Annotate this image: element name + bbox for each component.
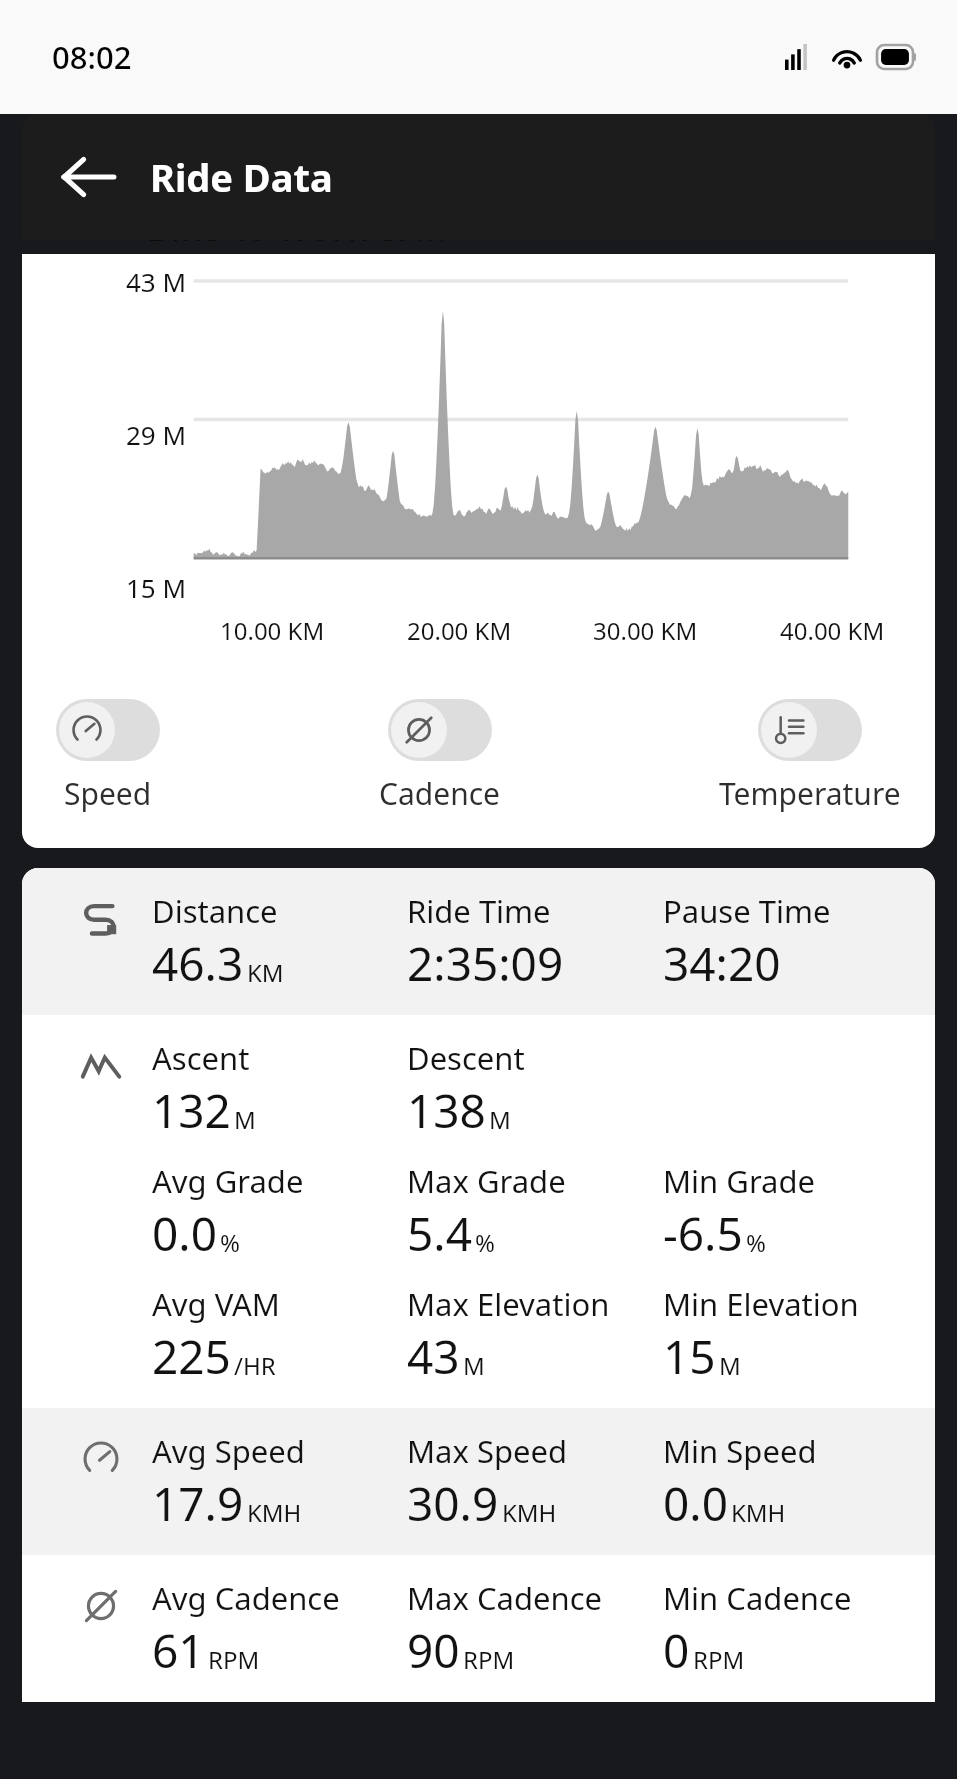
staticText: % xyxy=(746,1226,766,1259)
staticText: 132 xyxy=(152,1079,231,1142)
staticText: 17.9 xyxy=(152,1472,244,1535)
staticText: M xyxy=(489,1103,511,1136)
staticText: Speed xyxy=(64,773,152,814)
staticText: 15 xyxy=(663,1325,716,1388)
staticText: 0.0 xyxy=(663,1472,728,1535)
staticText: Ride Time xyxy=(407,890,551,932)
staticText: M xyxy=(719,1349,741,1382)
staticText: 08:02 xyxy=(52,36,132,78)
staticText: Avg VAM xyxy=(152,1283,280,1325)
button[interactable]: Temperature xyxy=(713,699,907,814)
button[interactable]: Ascent xyxy=(22,1015,935,1408)
staticText: Ascent xyxy=(152,1037,250,1079)
staticText: Avg Grade xyxy=(152,1160,304,1202)
staticText: 20.00 KM xyxy=(407,614,512,647)
staticText: 34:20 xyxy=(663,932,781,995)
button[interactable]: Distance xyxy=(22,868,935,1015)
staticText: KMH xyxy=(731,1496,786,1529)
staticText: M xyxy=(234,1103,256,1136)
staticText: Avg Cadence xyxy=(152,1577,340,1619)
staticText: 30.9 xyxy=(407,1472,499,1535)
staticText: M xyxy=(463,1349,485,1382)
staticText: -6.5 xyxy=(663,1202,743,1265)
staticText: Avg Speed xyxy=(152,1430,305,1472)
staticText: Max Speed xyxy=(407,1430,568,1472)
staticText: 225 xyxy=(152,1325,231,1388)
button[interactable]: Avg Speed xyxy=(22,1408,935,1555)
staticText: Ride Data xyxy=(150,151,333,203)
staticText: % xyxy=(220,1226,240,1259)
staticText: 5.4 xyxy=(407,1202,472,1265)
button[interactable]: Avg Cadence xyxy=(22,1555,935,1702)
staticText: Descent xyxy=(407,1037,525,1079)
staticText: 0 xyxy=(663,1619,690,1682)
staticText: Distance xyxy=(152,890,278,932)
staticText: Min Grade xyxy=(663,1160,816,1202)
staticText: Pause Time xyxy=(663,890,831,932)
staticText: 0.0 xyxy=(152,1202,217,1265)
button[interactable]: Back xyxy=(52,141,124,213)
staticText: 15 M xyxy=(126,570,187,605)
staticText: 138 xyxy=(407,1079,486,1142)
staticText: RPM xyxy=(208,1643,260,1676)
staticText: % xyxy=(475,1226,495,1259)
staticText: /HR xyxy=(234,1349,276,1382)
staticText: Min Elevation xyxy=(663,1283,859,1325)
staticText: Max Elevation xyxy=(407,1283,610,1325)
staticText: RPM xyxy=(463,1643,515,1676)
staticText: 43 xyxy=(407,1325,460,1388)
staticText: Cadence xyxy=(379,773,501,814)
staticText: 29 M xyxy=(126,417,187,452)
staticText: 40.00 KM xyxy=(780,614,885,647)
staticText: 30.00 KM xyxy=(593,614,698,647)
staticText: 10.00 KM xyxy=(220,614,325,647)
staticText: 2:35:09 xyxy=(407,932,564,995)
staticText: Min Speed xyxy=(663,1430,817,1472)
staticText: 90 xyxy=(407,1619,460,1682)
staticText: RPM xyxy=(693,1643,745,1676)
staticText: Min Cadence xyxy=(663,1577,852,1619)
staticText: Max Cadence xyxy=(407,1577,603,1619)
staticText: 46.3 xyxy=(152,932,244,995)
staticText: Max Grade xyxy=(407,1160,566,1202)
staticText: 61 xyxy=(152,1619,205,1682)
staticText: KM xyxy=(247,956,284,989)
staticText: KMH xyxy=(502,1496,557,1529)
staticText: Temperature xyxy=(719,773,901,814)
button[interactable]: Speed xyxy=(50,699,166,814)
button[interactable]: Cadence xyxy=(373,699,507,814)
staticText: 43 M xyxy=(126,264,187,299)
staticText: KMH xyxy=(247,1496,302,1529)
